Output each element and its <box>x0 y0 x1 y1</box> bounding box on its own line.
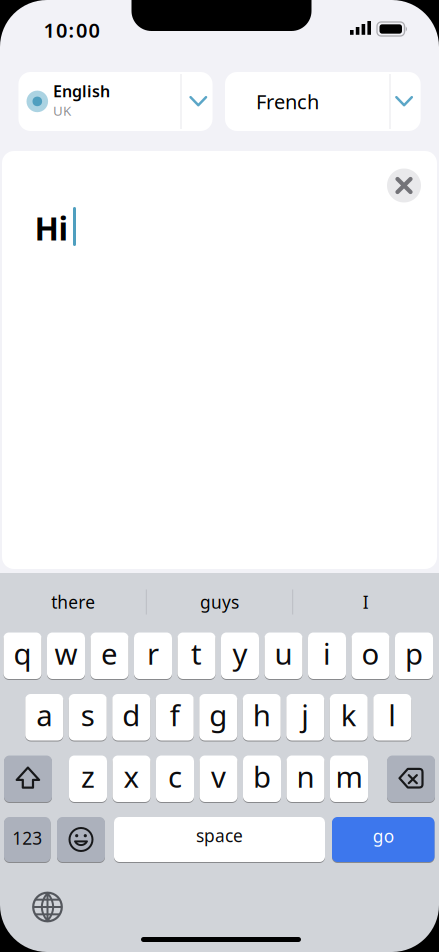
button[interactable]: p <box>395 632 433 679</box>
button[interactable]: l <box>373 694 411 740</box>
button[interactable]: guys <box>149 582 289 622</box>
button[interactable]: d <box>112 694 150 740</box>
button[interactable] <box>4 755 52 802</box>
staticText: UK <box>53 102 71 119</box>
button[interactable]: t <box>177 632 215 679</box>
button[interactable]: I <box>296 582 436 622</box>
button[interactable]: s <box>69 694 107 740</box>
button[interactable]: z <box>69 755 107 802</box>
staticText: j <box>301 695 309 734</box>
staticText: 123 <box>12 826 42 849</box>
button[interactable]: 123 <box>4 817 50 862</box>
button[interactable]: y <box>221 632 259 679</box>
button[interactable]: u <box>264 632 302 679</box>
staticText: e <box>101 634 118 673</box>
staticText: z <box>81 757 95 796</box>
button[interactable]: b <box>243 755 281 802</box>
staticText: n <box>296 757 314 796</box>
staticText: r <box>147 634 159 673</box>
button[interactable]: i <box>308 632 346 679</box>
staticText: u <box>274 634 292 673</box>
staticText: i <box>323 634 331 673</box>
staticText: w <box>54 634 77 673</box>
staticText: a <box>36 695 52 734</box>
button[interactable]: x <box>112 755 150 802</box>
staticText: I <box>363 590 369 613</box>
button[interactable] <box>57 817 105 862</box>
staticText: there <box>51 590 95 613</box>
staticText: space <box>196 824 243 847</box>
staticText: guys <box>200 590 239 613</box>
staticText: 10:00 <box>43 17 99 43</box>
button[interactable] <box>25 885 69 929</box>
button[interactable]: k <box>330 694 368 740</box>
button[interactable]: there <box>3 582 143 622</box>
staticText: q <box>13 634 31 673</box>
staticText: go <box>373 824 394 847</box>
button[interactable]: English <box>18 72 212 131</box>
button[interactable]: e <box>90 632 128 679</box>
button[interactable] <box>387 168 421 202</box>
staticText: h <box>253 695 271 734</box>
button[interactable]: go <box>332 817 434 862</box>
button[interactable]: space <box>114 817 325 862</box>
staticText: l <box>388 695 396 734</box>
button[interactable]: French <box>225 72 421 131</box>
button[interactable]: c <box>156 755 194 802</box>
staticText: o <box>361 634 379 673</box>
button[interactable]: n <box>286 755 324 802</box>
button[interactable]: g <box>199 694 237 740</box>
button[interactable]: o <box>351 632 389 679</box>
button[interactable]: f <box>156 694 194 740</box>
staticText: Hi <box>34 207 68 249</box>
button[interactable]: v <box>199 755 237 802</box>
staticText: m <box>335 757 362 796</box>
button[interactable]: r <box>134 632 172 679</box>
button[interactable]: q <box>3 632 41 679</box>
staticText: English <box>53 80 110 102</box>
staticText: p <box>405 634 423 673</box>
staticText: s <box>81 695 95 734</box>
button[interactable]: a <box>25 694 63 740</box>
staticText: f <box>170 695 180 734</box>
staticText: b <box>253 757 271 796</box>
staticText: t <box>191 634 202 673</box>
staticText: French <box>256 88 319 115</box>
staticText: v <box>211 757 226 796</box>
staticText: d <box>122 695 140 734</box>
button[interactable] <box>387 755 435 802</box>
staticText: c <box>168 757 182 796</box>
button[interactable]: j <box>286 694 324 740</box>
staticText: x <box>123 757 139 796</box>
staticText: k <box>341 695 357 734</box>
staticText: g <box>209 695 227 734</box>
staticText: y <box>232 634 247 673</box>
button[interactable]: h <box>243 694 281 740</box>
button[interactable]: m <box>330 755 368 802</box>
button[interactable]: w <box>47 632 85 679</box>
